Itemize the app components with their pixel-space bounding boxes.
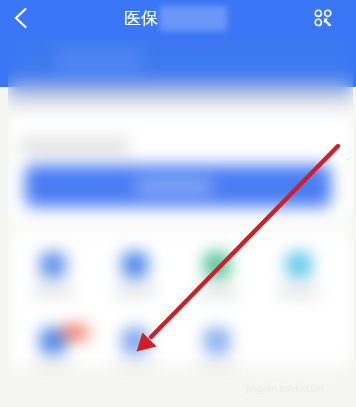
staticText: 医保 [124, 8, 158, 29]
button[interactable]: Service [25, 328, 81, 380]
button[interactable]: Service [25, 252, 81, 304]
button[interactable]: Service [189, 252, 245, 304]
button[interactable]: Service [107, 328, 163, 380]
button[interactable]: Service [107, 252, 163, 304]
button[interactable]: Back [0, 0, 44, 40]
button[interactable]: Service [271, 252, 327, 304]
button[interactable] [25, 165, 331, 207]
button[interactable]: Service [189, 328, 245, 380]
button[interactable]: Mini program menu [307, 0, 347, 40]
staticText: Baidu 经验 [240, 359, 337, 385]
